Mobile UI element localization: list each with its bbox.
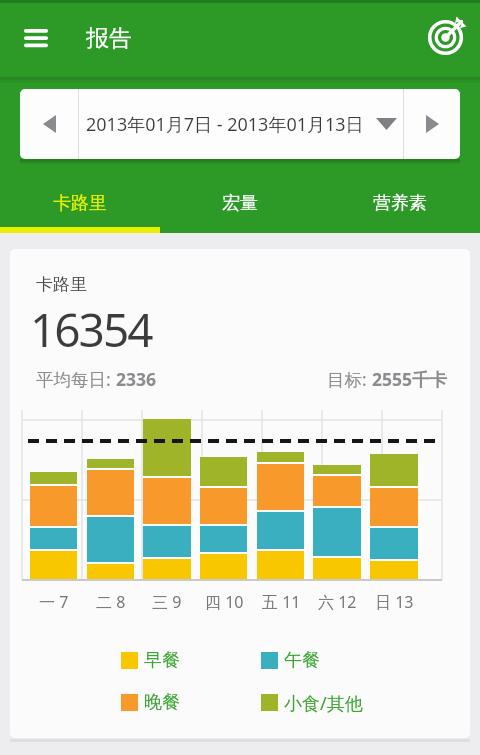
staticText: 2013年01月7日 - 2013年01月13日 — [86, 112, 364, 137]
staticText: 四 10 — [205, 591, 244, 613]
staticText: 营养素 — [373, 192, 427, 215]
staticText: 宏量 — [222, 192, 258, 215]
staticText: 报告 — [86, 24, 132, 53]
staticText: 小食/其他 — [284, 691, 363, 716]
button[interactable]: 2013年01月7日 - 2013年01月13日 — [79, 89, 403, 159]
button[interactable]: 营养素 — [320, 174, 480, 233]
staticText: 早餐 — [144, 649, 180, 672]
staticText: 六 12 — [318, 591, 357, 613]
staticText: 三 9 — [152, 591, 182, 613]
staticText: 五 11 — [262, 591, 301, 613]
button[interactable] — [20, 89, 78, 159]
staticText: 日 13 — [375, 591, 414, 613]
staticText: 目标: — [327, 367, 372, 391]
staticText: 二 8 — [96, 591, 126, 613]
button[interactable] — [14, 18, 58, 60]
button[interactable]: 卡路里 — [0, 174, 160, 233]
staticText: 晚餐 — [144, 691, 180, 714]
staticText: 2555千卡 — [372, 367, 448, 391]
button[interactable]: 宏量 — [160, 174, 320, 233]
staticText: 16354 — [30, 298, 152, 361]
staticText: 卡路里 — [53, 192, 107, 215]
staticText: 2336 — [116, 367, 157, 391]
staticText: 卡路里 — [36, 274, 87, 295]
staticText: 午餐 — [284, 649, 320, 672]
button[interactable] — [420, 12, 472, 64]
staticText: 一 7 — [39, 591, 69, 613]
staticText: 平均每日: — [36, 367, 116, 391]
button[interactable] — [404, 89, 460, 159]
